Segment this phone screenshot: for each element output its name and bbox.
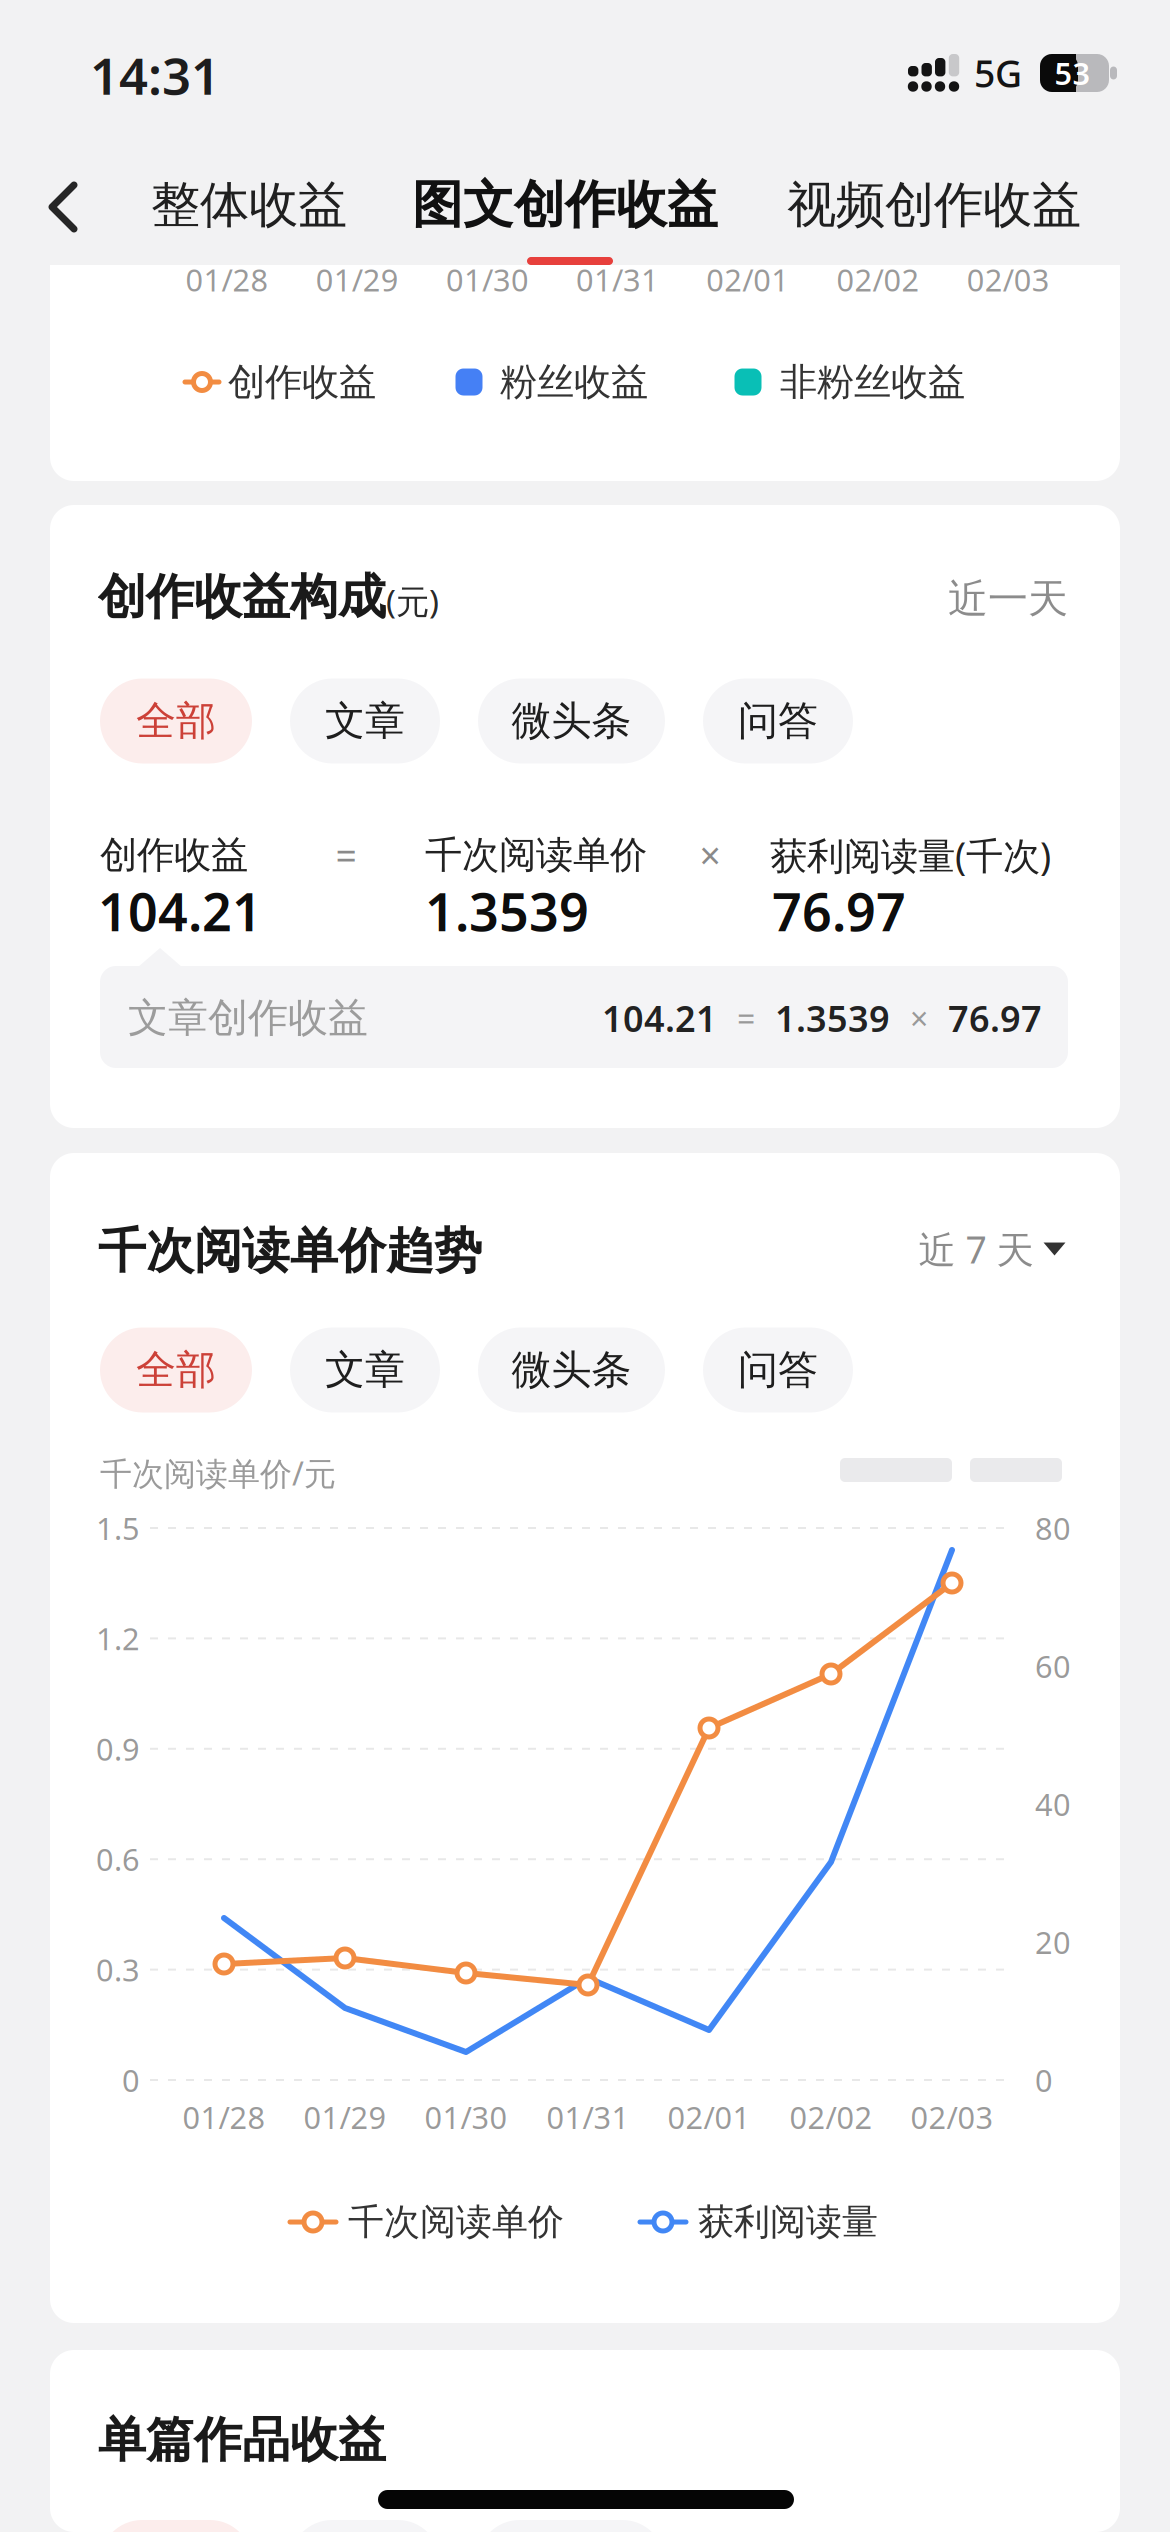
- staticText: 60: [1035, 1646, 1071, 1686]
- staticText: 文章创作收益: [128, 993, 368, 1042]
- staticText: 创作收益构成: [98, 567, 386, 626]
- button[interactable]: 问答: [703, 1327, 853, 1412]
- button[interactable]: 全部: [100, 1327, 252, 1412]
- staticText: 104.21: [98, 876, 262, 946]
- button[interactable]: 近 7 天: [918, 1217, 1065, 1281]
- staticText: 问答: [738, 1345, 818, 1394]
- staticText: 53: [1054, 53, 1090, 93]
- staticText: 非粉丝收益: [780, 359, 965, 405]
- staticText: 02/03: [967, 259, 1050, 300]
- staticText: 02/01: [667, 2097, 750, 2137]
- button[interactable]: 全部: [100, 678, 252, 763]
- staticText: (元): [386, 579, 439, 623]
- button[interactable]: 文章: [290, 2520, 440, 2532]
- staticText: 01/31: [546, 2097, 629, 2137]
- staticText: 01/28: [185, 259, 268, 300]
- staticText: 问答: [738, 696, 818, 745]
- staticText: 76.97: [948, 994, 1042, 1042]
- staticText: 获利阅读量(千次): [770, 830, 1051, 880]
- staticText: 02/02: [836, 259, 919, 300]
- button[interactable]: 微头条: [477, 2520, 664, 2532]
- staticText: 获利阅读量: [698, 2200, 878, 2244]
- staticText: 千次阅读单价: [425, 832, 647, 878]
- staticText: 80: [1035, 1508, 1071, 1548]
- staticText: 千次阅读单价趋势: [98, 1221, 482, 1280]
- staticText: 14:31: [90, 41, 220, 109]
- staticText: 创作收益: [100, 832, 248, 878]
- staticText: 单篇作品收益: [98, 2410, 386, 2469]
- staticText: 1.3539: [775, 994, 890, 1042]
- staticText: 1.5: [96, 1508, 140, 1548]
- button[interactable]: 全部: [100, 2520, 252, 2532]
- staticText: 01/29: [316, 259, 399, 300]
- staticText: 104.21: [602, 994, 717, 1042]
- staticText: 千次阅读单价: [348, 2200, 564, 2244]
- button[interactable]: 整体收益: [134, 167, 364, 243]
- button[interactable]: 图文创作收益: [395, 167, 735, 243]
- staticText: 0.3: [96, 1949, 140, 1990]
- staticText: 0.9: [96, 1728, 140, 1769]
- staticText: 近一天: [948, 574, 1068, 623]
- staticText: 01/30: [424, 2097, 507, 2137]
- staticText: 02/03: [910, 2097, 993, 2137]
- staticText: =: [335, 830, 356, 880]
- staticText: 02/01: [706, 259, 789, 300]
- staticText: 全部: [136, 696, 216, 745]
- button[interactable]: 微头条: [478, 678, 665, 763]
- staticText: 01/31: [576, 259, 659, 300]
- staticText: 01/29: [303, 2097, 386, 2137]
- staticText: 全部: [136, 1345, 216, 1394]
- staticText: 千次阅读单价/元: [100, 1452, 336, 1494]
- staticText: 01/28: [182, 2097, 265, 2137]
- staticText: 图文创作收益: [412, 174, 718, 236]
- staticText: 微头条: [511, 1345, 631, 1394]
- button[interactable]: 文章: [290, 678, 440, 763]
- staticText: 01/30: [446, 259, 529, 300]
- staticText: ×: [699, 830, 720, 880]
- staticText: 整体收益: [151, 175, 347, 235]
- staticText: 视频创作收益: [787, 175, 1081, 235]
- staticText: =: [737, 997, 755, 1039]
- staticText: 微头条: [511, 696, 631, 745]
- staticText: 1.2: [96, 1618, 140, 1659]
- staticText: 76.97: [772, 876, 906, 946]
- staticText: 文章: [325, 1345, 405, 1394]
- staticText: 0.6: [96, 1839, 140, 1879]
- staticText: 创作收益: [228, 359, 376, 405]
- staticText: ×: [910, 997, 928, 1039]
- button[interactable]: 视频创作收益: [764, 167, 1104, 243]
- staticText: 0: [1035, 2060, 1053, 2100]
- staticText: 40: [1035, 1784, 1071, 1824]
- staticText: 1.3539: [425, 876, 589, 946]
- staticText: 文章: [325, 696, 405, 745]
- button[interactable]: 返回: [48, 181, 78, 233]
- button[interactable]: 问答: [703, 678, 853, 763]
- button[interactable]: 文章: [290, 1327, 440, 1412]
- button[interactable]: 微头条: [478, 1327, 665, 1412]
- staticText: 粉丝收益: [500, 359, 648, 405]
- staticText: 0: [122, 2060, 140, 2100]
- staticText: 02/02: [789, 2097, 872, 2137]
- staticText: 20: [1035, 1922, 1071, 1962]
- staticText: 近 7 天: [918, 1224, 1033, 1274]
- button[interactable]: 近一天: [933, 567, 1083, 631]
- staticText: 5G: [974, 48, 1022, 98]
